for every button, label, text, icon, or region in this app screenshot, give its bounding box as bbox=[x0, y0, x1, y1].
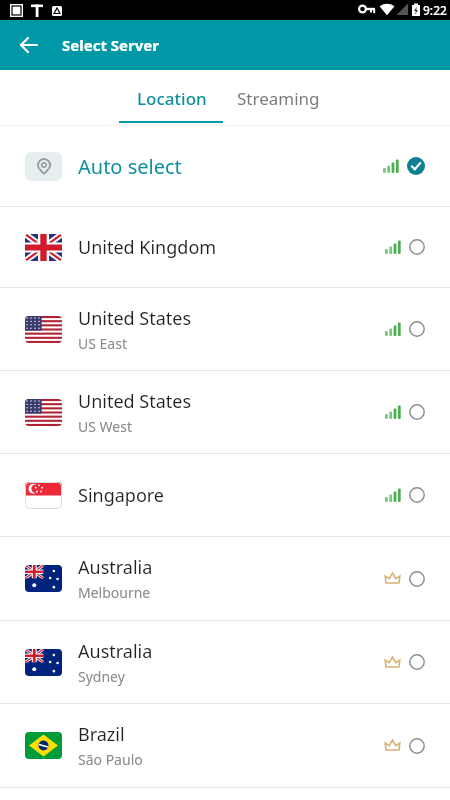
staticText: Sydney bbox=[78, 667, 125, 686]
button[interactable]: Streaming bbox=[225, 70, 331, 126]
button[interactable]: United Kingdom bbox=[0, 207, 450, 287]
staticText: Select Server bbox=[62, 35, 159, 55]
staticText: United Kingdom bbox=[78, 235, 217, 260]
staticText: US West bbox=[78, 417, 132, 436]
button[interactable]: Location bbox=[119, 70, 225, 126]
staticText: Melbourne bbox=[78, 583, 151, 602]
button[interactable] bbox=[14, 31, 42, 59]
staticText: 9:22 bbox=[423, 2, 447, 18]
staticText: United States bbox=[78, 389, 192, 414]
button[interactable]: United States bbox=[0, 371, 450, 453]
button[interactable]: Australia bbox=[0, 537, 450, 620]
button[interactable]: Australia bbox=[0, 621, 450, 703]
staticText: Brazil bbox=[78, 722, 125, 747]
staticText: US East bbox=[78, 334, 127, 353]
button[interactable]: Singapore bbox=[0, 454, 450, 536]
staticText: Auto select bbox=[78, 153, 383, 180]
button[interactable]: United States bbox=[0, 288, 450, 370]
button[interactable]: Brazil bbox=[0, 704, 450, 787]
staticText: Singapore bbox=[78, 483, 165, 508]
staticText: Location bbox=[137, 87, 207, 110]
staticText: Australia bbox=[78, 639, 153, 664]
staticText: United States bbox=[78, 306, 192, 331]
staticText: Streaming bbox=[237, 87, 320, 110]
button[interactable]: Auto select bbox=[0, 126, 450, 206]
staticText: Australia bbox=[78, 555, 153, 580]
staticText: São Paulo bbox=[78, 750, 143, 769]
